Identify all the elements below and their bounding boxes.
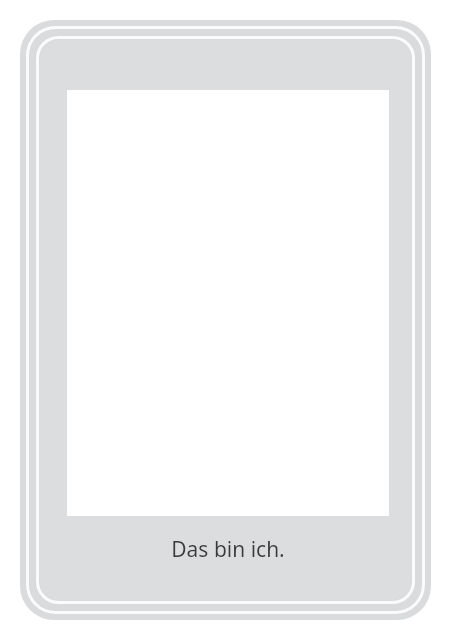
button[interactable]: Foto: Das bin ich. — [0, 0, 451, 640]
staticText: Das bin ich. — [171, 535, 285, 564]
